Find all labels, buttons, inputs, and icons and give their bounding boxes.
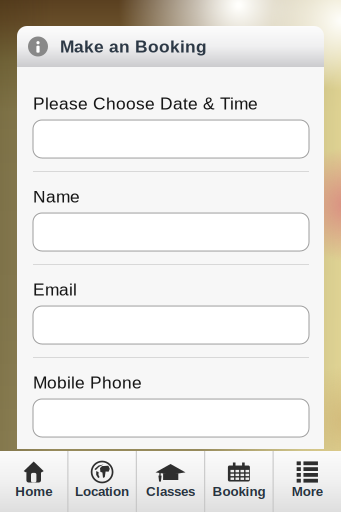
button[interactable]: Booking bbox=[205, 451, 273, 512]
button[interactable] bbox=[33, 213, 309, 251]
staticText: More bbox=[292, 484, 323, 499]
staticText: Location bbox=[75, 484, 129, 499]
staticText: Make an Booking bbox=[60, 37, 207, 56]
staticText: Email bbox=[33, 280, 77, 299]
button[interactable]: Location bbox=[68, 451, 136, 512]
staticText: Home bbox=[15, 484, 52, 499]
button[interactable]: Home bbox=[0, 451, 67, 512]
staticText: Classes bbox=[146, 484, 195, 499]
button[interactable]: Classes bbox=[137, 451, 204, 512]
staticText: Booking bbox=[212, 484, 265, 499]
button[interactable] bbox=[33, 120, 309, 158]
button[interactable] bbox=[33, 306, 309, 344]
button[interactable]: More bbox=[274, 451, 341, 512]
staticText: Name bbox=[33, 187, 80, 206]
staticText: Mobile Phone bbox=[33, 373, 142, 392]
staticText: Please Choose Date & Time bbox=[33, 94, 258, 113]
button[interactable] bbox=[33, 399, 309, 437]
